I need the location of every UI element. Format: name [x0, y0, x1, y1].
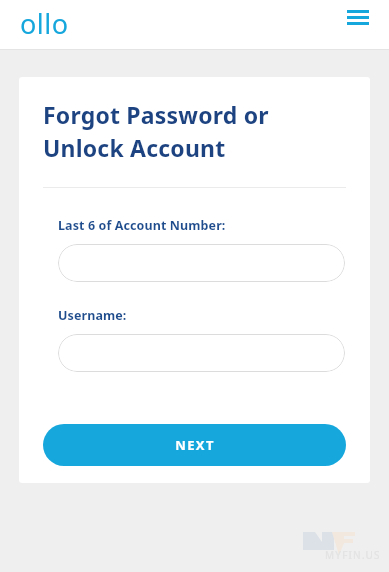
- button[interactable]: Last 6 of Account Number input: [58, 244, 345, 282]
- staticText: ollo: [20, 5, 69, 42]
- button[interactable]: NEXT: [43, 424, 346, 466]
- button[interactable]: Menu: [345, 5, 371, 31]
- staticText: Forgot Password or Unlock Account: [43, 99, 269, 164]
- button[interactable]: ollo home: [18, 3, 71, 44]
- staticText: Username:: [58, 307, 127, 324]
- staticText: MYFIN.US: [325, 548, 381, 562]
- staticText: NEXT: [175, 436, 215, 454]
- button[interactable]: Username input: [58, 334, 345, 372]
- staticText: Last 6 of Account Number:: [58, 217, 226, 234]
